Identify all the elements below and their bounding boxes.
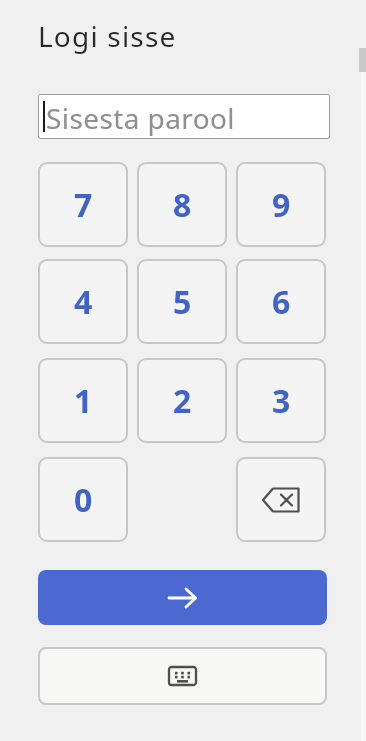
staticText: Logi sisse — [38, 17, 177, 55]
button[interactable] — [236, 457, 326, 542]
button[interactable] — [38, 570, 327, 625]
staticText: 2 — [173, 379, 192, 423]
button[interactable]: 2 — [137, 358, 227, 443]
staticText: 1 — [74, 379, 93, 423]
staticText: Sisesta parool — [46, 99, 235, 137]
button[interactable]: 0 — [38, 457, 128, 542]
staticText: 5 — [173, 280, 192, 324]
button[interactable]: 6 — [236, 259, 326, 344]
button[interactable]: 3 — [236, 358, 326, 443]
button[interactable]: Sisesta parool — [38, 94, 330, 139]
staticText: 3 — [272, 379, 291, 423]
button[interactable]: 8 — [137, 162, 227, 247]
button[interactable]: 4 — [38, 259, 128, 344]
staticText: 9 — [272, 183, 291, 227]
staticText: 8 — [173, 183, 192, 227]
staticText: 6 — [272, 280, 291, 324]
button[interactable]: 5 — [137, 259, 227, 344]
button[interactable]: 9 — [236, 162, 326, 247]
staticText: 0 — [74, 478, 93, 522]
staticText: 4 — [74, 280, 93, 324]
button[interactable]: 7 — [38, 162, 128, 247]
staticText: 7 — [74, 183, 93, 227]
button[interactable] — [38, 647, 327, 705]
button[interactable]: 1 — [38, 358, 128, 443]
